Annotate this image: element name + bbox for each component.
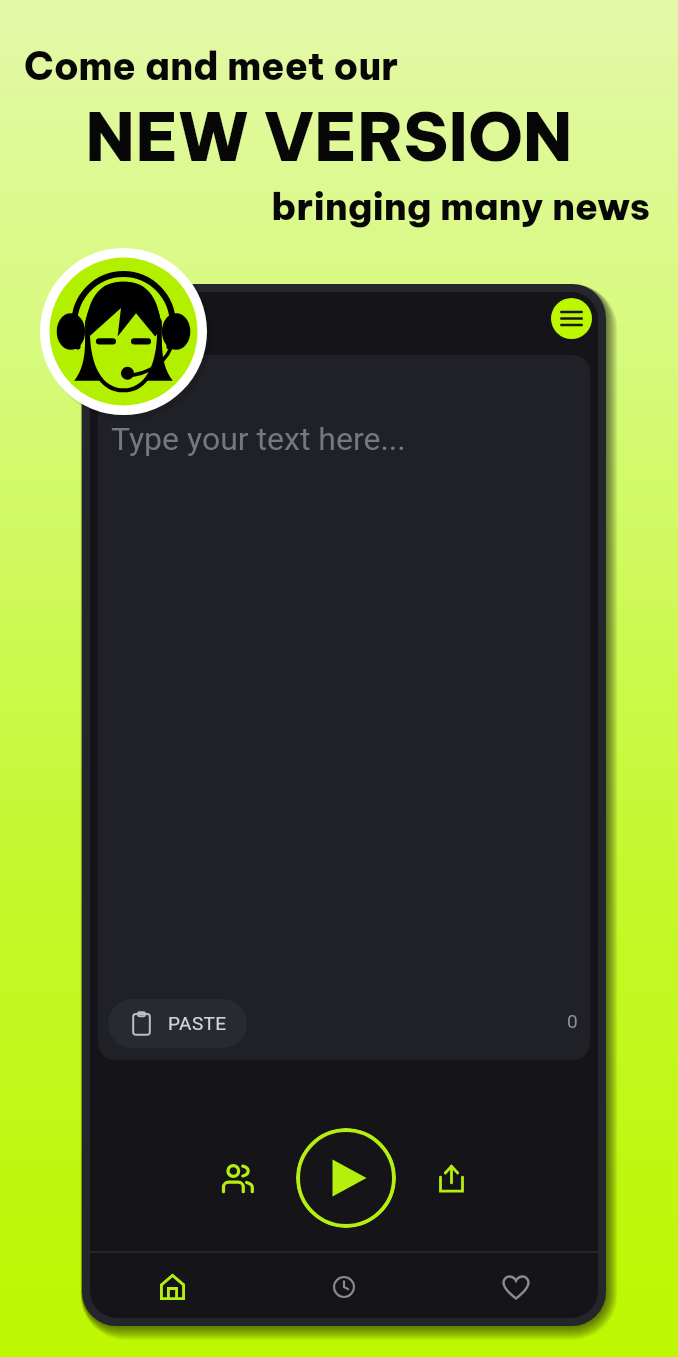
staticText: Come and meet our [24,42,398,90]
button[interactable]: Favourites [487,1258,545,1316]
button[interactable]: Contacts [206,1145,272,1211]
staticText: bringing many news [0,182,650,230]
staticText: Type your text here... [111,420,406,458]
button[interactable]: Play [296,1128,396,1228]
button[interactable]: PASTE [108,999,247,1048]
button[interactable]: Home [143,1258,201,1316]
staticText: NEW VERSION [0,95,668,178]
staticText: 0 [567,1010,578,1032]
button[interactable]: Share [418,1145,484,1211]
button[interactable]: Menu [551,298,592,339]
staticText: PASTE [168,1012,227,1034]
button[interactable]: History [315,1258,373,1316]
